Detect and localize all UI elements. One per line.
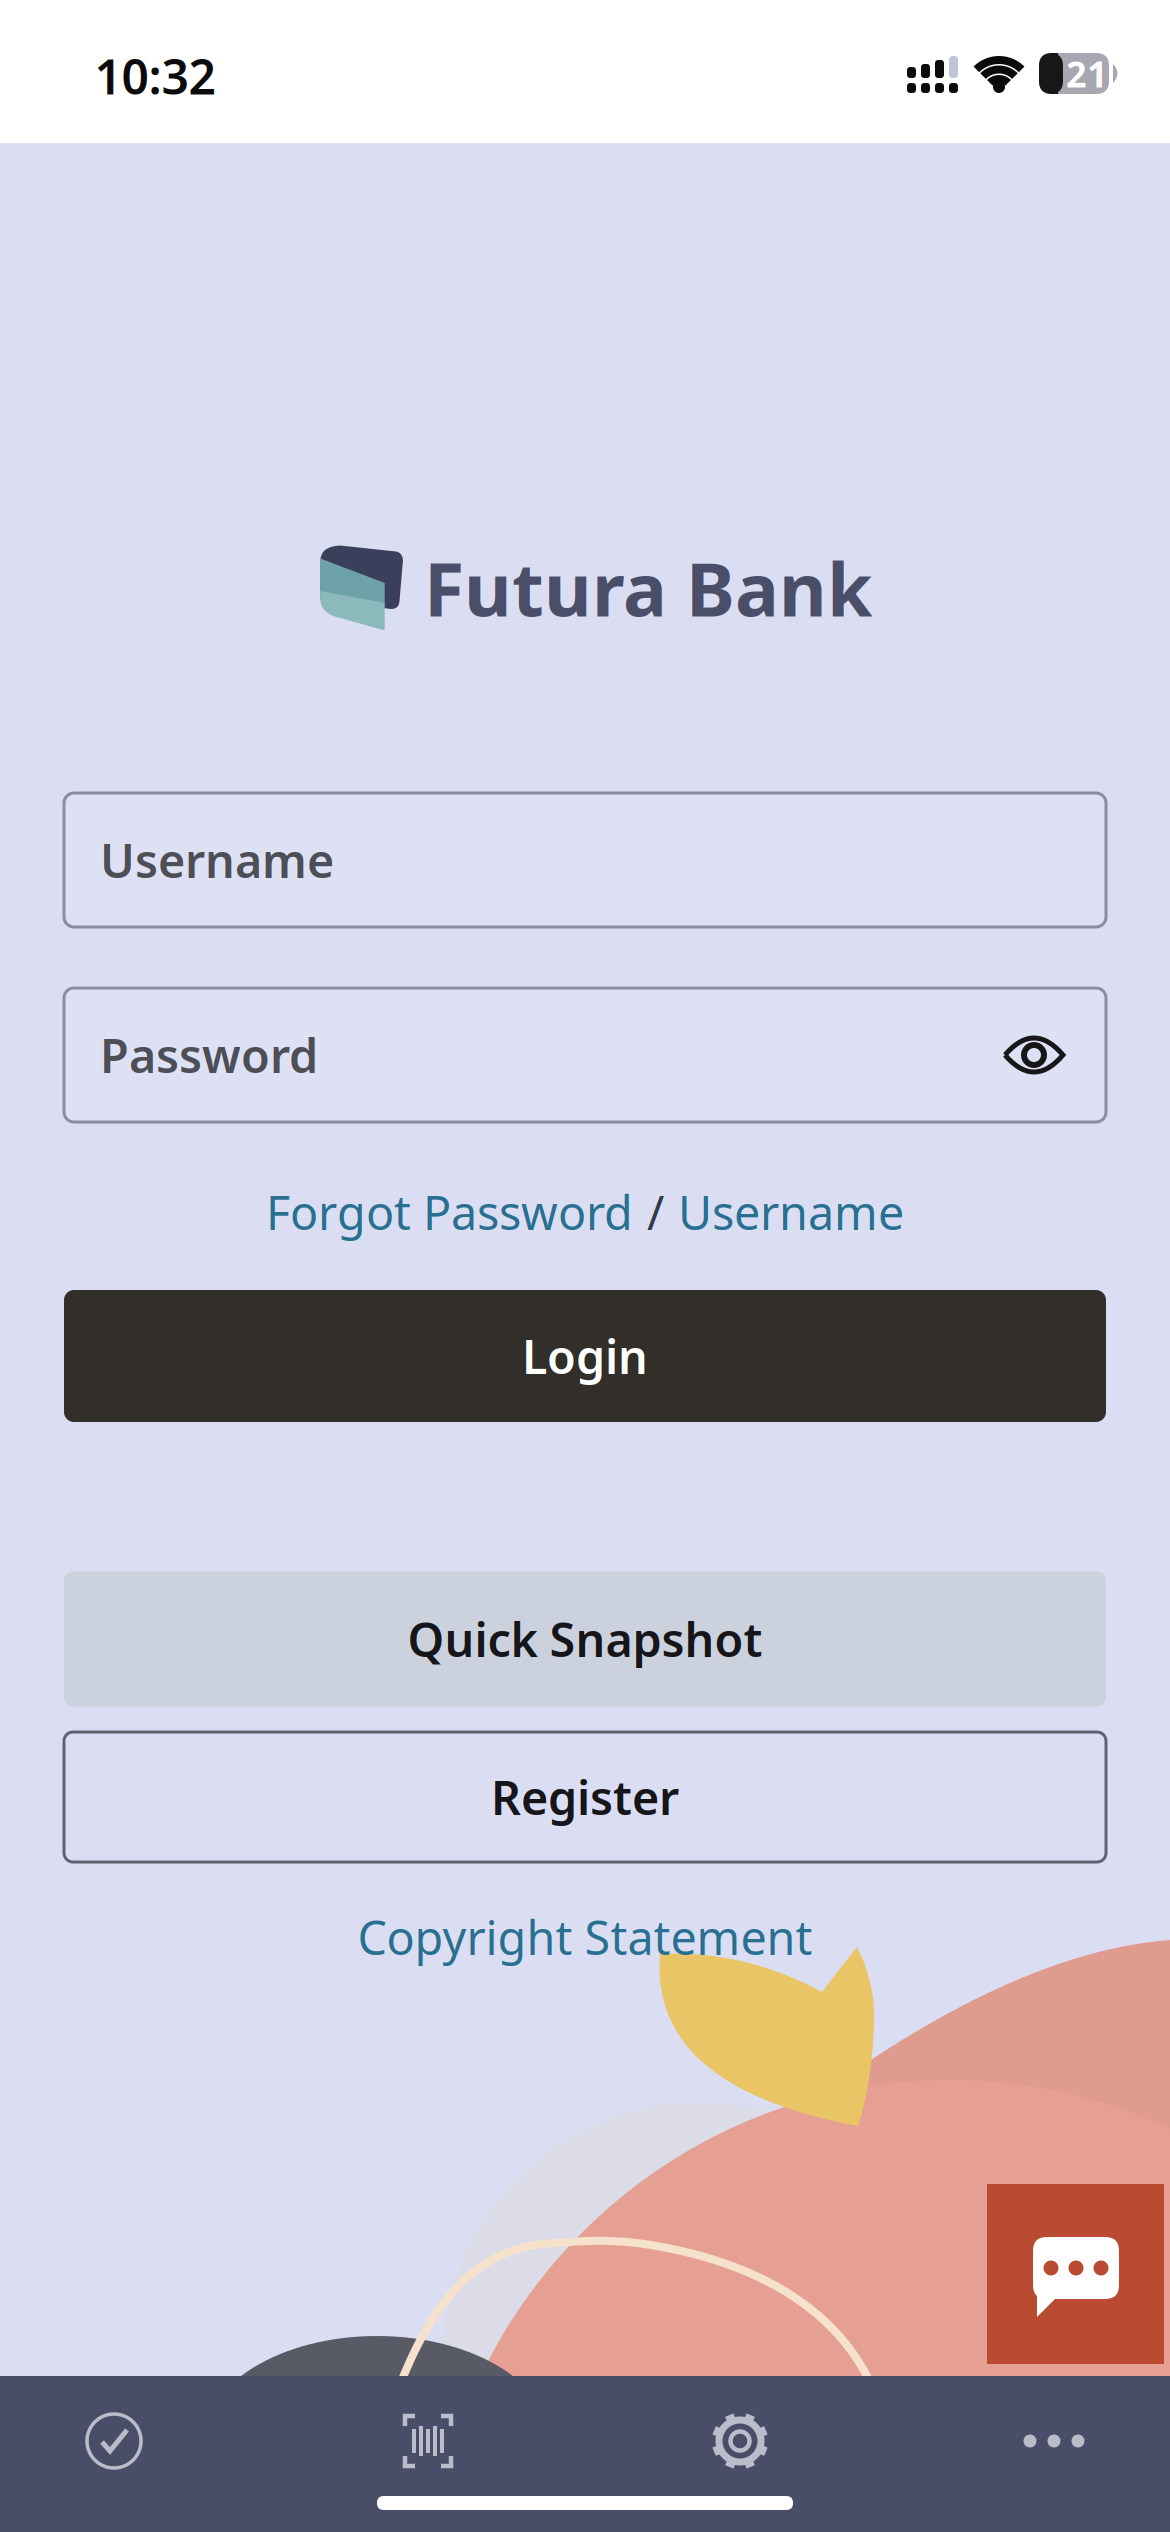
button[interactable]: Chat xyxy=(987,2184,1164,2364)
button[interactable]: Register xyxy=(64,1732,1106,1862)
button[interactable]: Login xyxy=(64,1290,1106,1422)
staticText: Forgot Password xyxy=(266,1181,633,1243)
staticText: Username xyxy=(678,1181,904,1243)
staticText: Copyright Statement xyxy=(357,1906,812,1968)
button[interactable]: Settings xyxy=(665,2376,815,2506)
button[interactable]: Forgot Password xyxy=(266,1181,633,1243)
staticText: Quick Snapshot xyxy=(407,1608,762,1670)
staticText: 10:32 xyxy=(94,44,215,108)
button[interactable]: More xyxy=(979,2376,1129,2506)
button[interactable]: Copyright Statement xyxy=(357,1906,812,1968)
button[interactable]: Quick Snapshot xyxy=(64,1571,1106,1706)
button[interactable]: Username xyxy=(64,793,1106,927)
staticText: Login xyxy=(522,1325,648,1387)
button[interactable]: Show password xyxy=(1002,1033,1066,1077)
staticText: Futura Bank xyxy=(424,539,872,637)
button[interactable]: Password xyxy=(64,988,1106,1122)
staticText: / xyxy=(647,1181,664,1243)
button[interactable]: Approvals xyxy=(39,2376,189,2506)
staticText: Password xyxy=(100,1024,318,1086)
staticText: 21 xyxy=(1066,50,1108,97)
staticText: Register xyxy=(491,1766,679,1828)
button[interactable]: Username xyxy=(678,1181,904,1243)
staticText: Username xyxy=(100,829,334,891)
button[interactable]: Scan xyxy=(353,2376,503,2506)
